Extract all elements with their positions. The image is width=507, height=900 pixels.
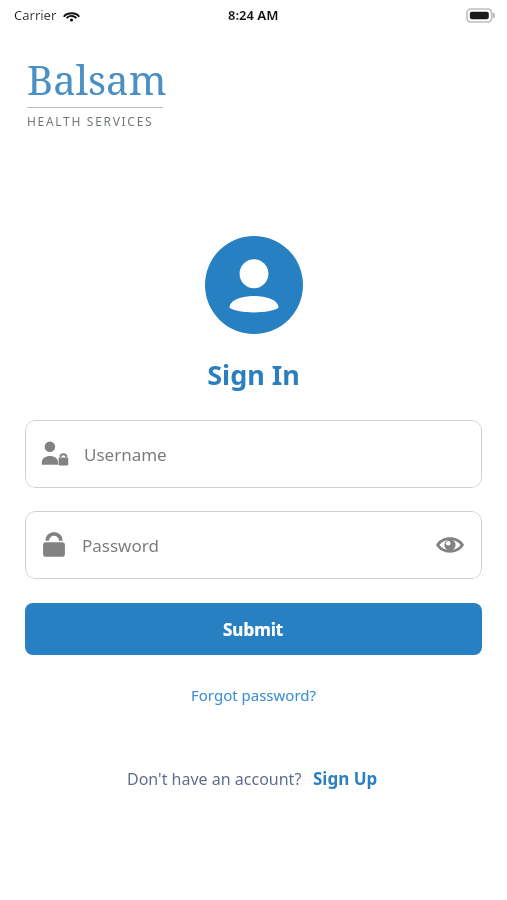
staticText: Forgot password? [191,685,317,705]
staticText: Password [82,534,159,557]
staticText: Balsam [27,52,167,106]
staticText: Don't have an account? [127,768,302,790]
staticText: Submit [223,618,284,641]
staticText: Carrier [14,6,57,24]
staticText: HEALTH SERVICES [27,113,154,129]
button[interactable]: Sign Up [311,764,380,793]
button[interactable]: Submit [25,603,482,655]
staticText: Sign Up [313,767,378,790]
staticText: Sign In [0,356,507,393]
other: User avatar [205,236,303,334]
button[interactable]: Username [25,420,482,488]
staticText: Username [84,443,167,466]
other: Battery full [467,9,495,22]
staticText: 8:24 AM [228,6,279,24]
button[interactable]: Show password [432,527,468,563]
other: Wi-Fi [63,9,80,22]
button[interactable]: Password [25,511,482,579]
button[interactable]: Forgot password? [183,681,325,709]
